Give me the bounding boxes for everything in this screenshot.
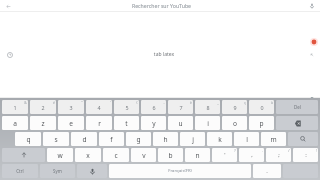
button[interactable]: 6 xyxy=(141,100,166,114)
staticText: h xyxy=(163,135,168,144)
staticText: : xyxy=(305,151,307,159)
button[interactable]: 5 xyxy=(114,100,139,114)
staticText: ç xyxy=(244,100,246,105)
button[interactable]: l xyxy=(234,132,259,146)
button[interactable]: j xyxy=(180,132,205,146)
staticText: e xyxy=(69,119,73,128)
button[interactable]: Majuscule xyxy=(2,148,45,162)
button[interactable]: t xyxy=(114,116,139,130)
button[interactable]: u xyxy=(168,116,193,130)
staticText: i xyxy=(207,119,209,128)
staticText: Sym xyxy=(53,168,62,174)
button[interactable]: q xyxy=(15,132,41,146)
button[interactable]: c xyxy=(103,148,129,162)
button[interactable]: k xyxy=(207,132,232,146)
button[interactable]: Sym xyxy=(40,164,75,178)
staticText: m xyxy=(270,135,277,144)
button[interactable]: a xyxy=(2,116,28,130)
staticText: é xyxy=(53,100,55,105)
button[interactable]: z xyxy=(30,116,56,130)
staticText: x xyxy=(86,151,90,160)
button[interactable]: f xyxy=(99,132,124,146)
button[interactable]: m xyxy=(261,132,286,146)
button[interactable]: 8 xyxy=(195,100,220,114)
button[interactable]: n xyxy=(185,148,210,162)
button[interactable]: tab latex xyxy=(0,12,320,98)
staticText: " xyxy=(81,100,83,105)
button[interactable]: o xyxy=(222,116,247,130)
staticText: à xyxy=(271,100,273,105)
button[interactable]: i xyxy=(195,116,220,130)
button[interactable]: 9 xyxy=(222,100,247,114)
button[interactable]: h xyxy=(153,132,178,146)
staticText: 2 xyxy=(41,104,45,111)
staticText: tab latex xyxy=(20,51,308,58)
button[interactable]: p xyxy=(249,116,274,130)
button[interactable]: 4 xyxy=(86,100,112,114)
staticText: q xyxy=(26,135,31,144)
button[interactable]: Effacer xyxy=(276,116,318,130)
staticText: l xyxy=(246,135,248,144)
staticText: o xyxy=(233,119,237,128)
button[interactable]: Dictée vocale xyxy=(77,164,107,178)
button[interactable]: ; xyxy=(266,148,291,162)
staticText: 8 xyxy=(206,104,210,111)
button[interactable]: . xyxy=(253,164,281,178)
staticText: k xyxy=(218,135,222,144)
staticText: d xyxy=(82,135,87,144)
staticText: ( xyxy=(136,100,138,105)
button[interactable]: d xyxy=(71,132,97,146)
button[interactable]: 3 xyxy=(58,100,84,114)
button[interactable]: Recherche vocale xyxy=(307,1,316,10)
staticText: Français(FR) xyxy=(168,168,192,174)
staticText: 3 xyxy=(69,104,73,111)
staticText: . xyxy=(266,167,268,175)
button[interactable]: 7 xyxy=(168,100,193,114)
button[interactable]: x xyxy=(75,148,101,162)
button[interactable]: w xyxy=(47,148,73,162)
button[interactable]: : xyxy=(293,148,318,162)
button[interactable]: 1 xyxy=(2,100,28,114)
staticText: 9 xyxy=(233,104,237,111)
button[interactable]: v xyxy=(131,148,156,162)
staticText: t xyxy=(125,119,128,128)
staticText: ! xyxy=(316,148,317,153)
button[interactable]: ' xyxy=(212,148,237,162)
staticText: 5 xyxy=(125,104,129,111)
staticText: p xyxy=(259,119,264,128)
staticText: . xyxy=(262,148,263,153)
button[interactable]: s xyxy=(43,132,69,146)
staticText: r xyxy=(98,119,101,128)
button[interactable]: Rechercher xyxy=(288,132,318,146)
button[interactable]: r xyxy=(86,116,112,130)
button[interactable]: Français(FR) xyxy=(109,164,251,178)
staticText: c xyxy=(114,151,118,160)
staticText: è xyxy=(190,100,192,105)
button[interactable]: Retour xyxy=(4,2,12,10)
staticText: w xyxy=(57,151,63,160)
button[interactable]: 2 xyxy=(30,100,56,114)
staticText: 7 xyxy=(179,104,183,111)
staticText: ' xyxy=(224,151,226,159)
button[interactable]: 0 xyxy=(249,100,274,114)
button[interactable]: , xyxy=(239,148,264,162)
button[interactable]: y xyxy=(141,116,166,130)
staticText: ? xyxy=(234,148,236,153)
staticText: 0 xyxy=(260,104,264,111)
button[interactable]: b xyxy=(158,148,183,162)
staticText: z xyxy=(41,119,45,128)
staticText: j xyxy=(192,135,194,144)
button[interactable]: e xyxy=(58,116,84,130)
staticText: 4 xyxy=(97,104,101,111)
staticText: & xyxy=(24,100,27,105)
staticText: f xyxy=(110,135,113,144)
button[interactable]: g xyxy=(126,132,151,146)
staticText: _ xyxy=(217,100,219,105)
button[interactable]: Insérer tab latex xyxy=(308,51,315,58)
button[interactable]: Ctrl xyxy=(2,164,38,178)
button[interactable]: Del xyxy=(276,100,318,114)
staticText: , xyxy=(251,151,253,159)
staticText: 6 xyxy=(152,104,156,111)
staticText: u xyxy=(178,119,183,128)
